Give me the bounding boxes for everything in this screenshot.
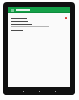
button[interactable]: Open navigation menu [10, 8, 15, 13]
button[interactable]: Back [21, 89, 25, 93]
button[interactable] [8, 29, 70, 32]
other: Alert [65, 17, 67, 19]
button[interactable]: Alert [8, 16, 70, 20]
button[interactable]: Recent apps [53, 89, 57, 93]
button[interactable] [8, 23, 70, 29]
button[interactable] [8, 20, 70, 23]
button[interactable]: Home [37, 89, 41, 93]
